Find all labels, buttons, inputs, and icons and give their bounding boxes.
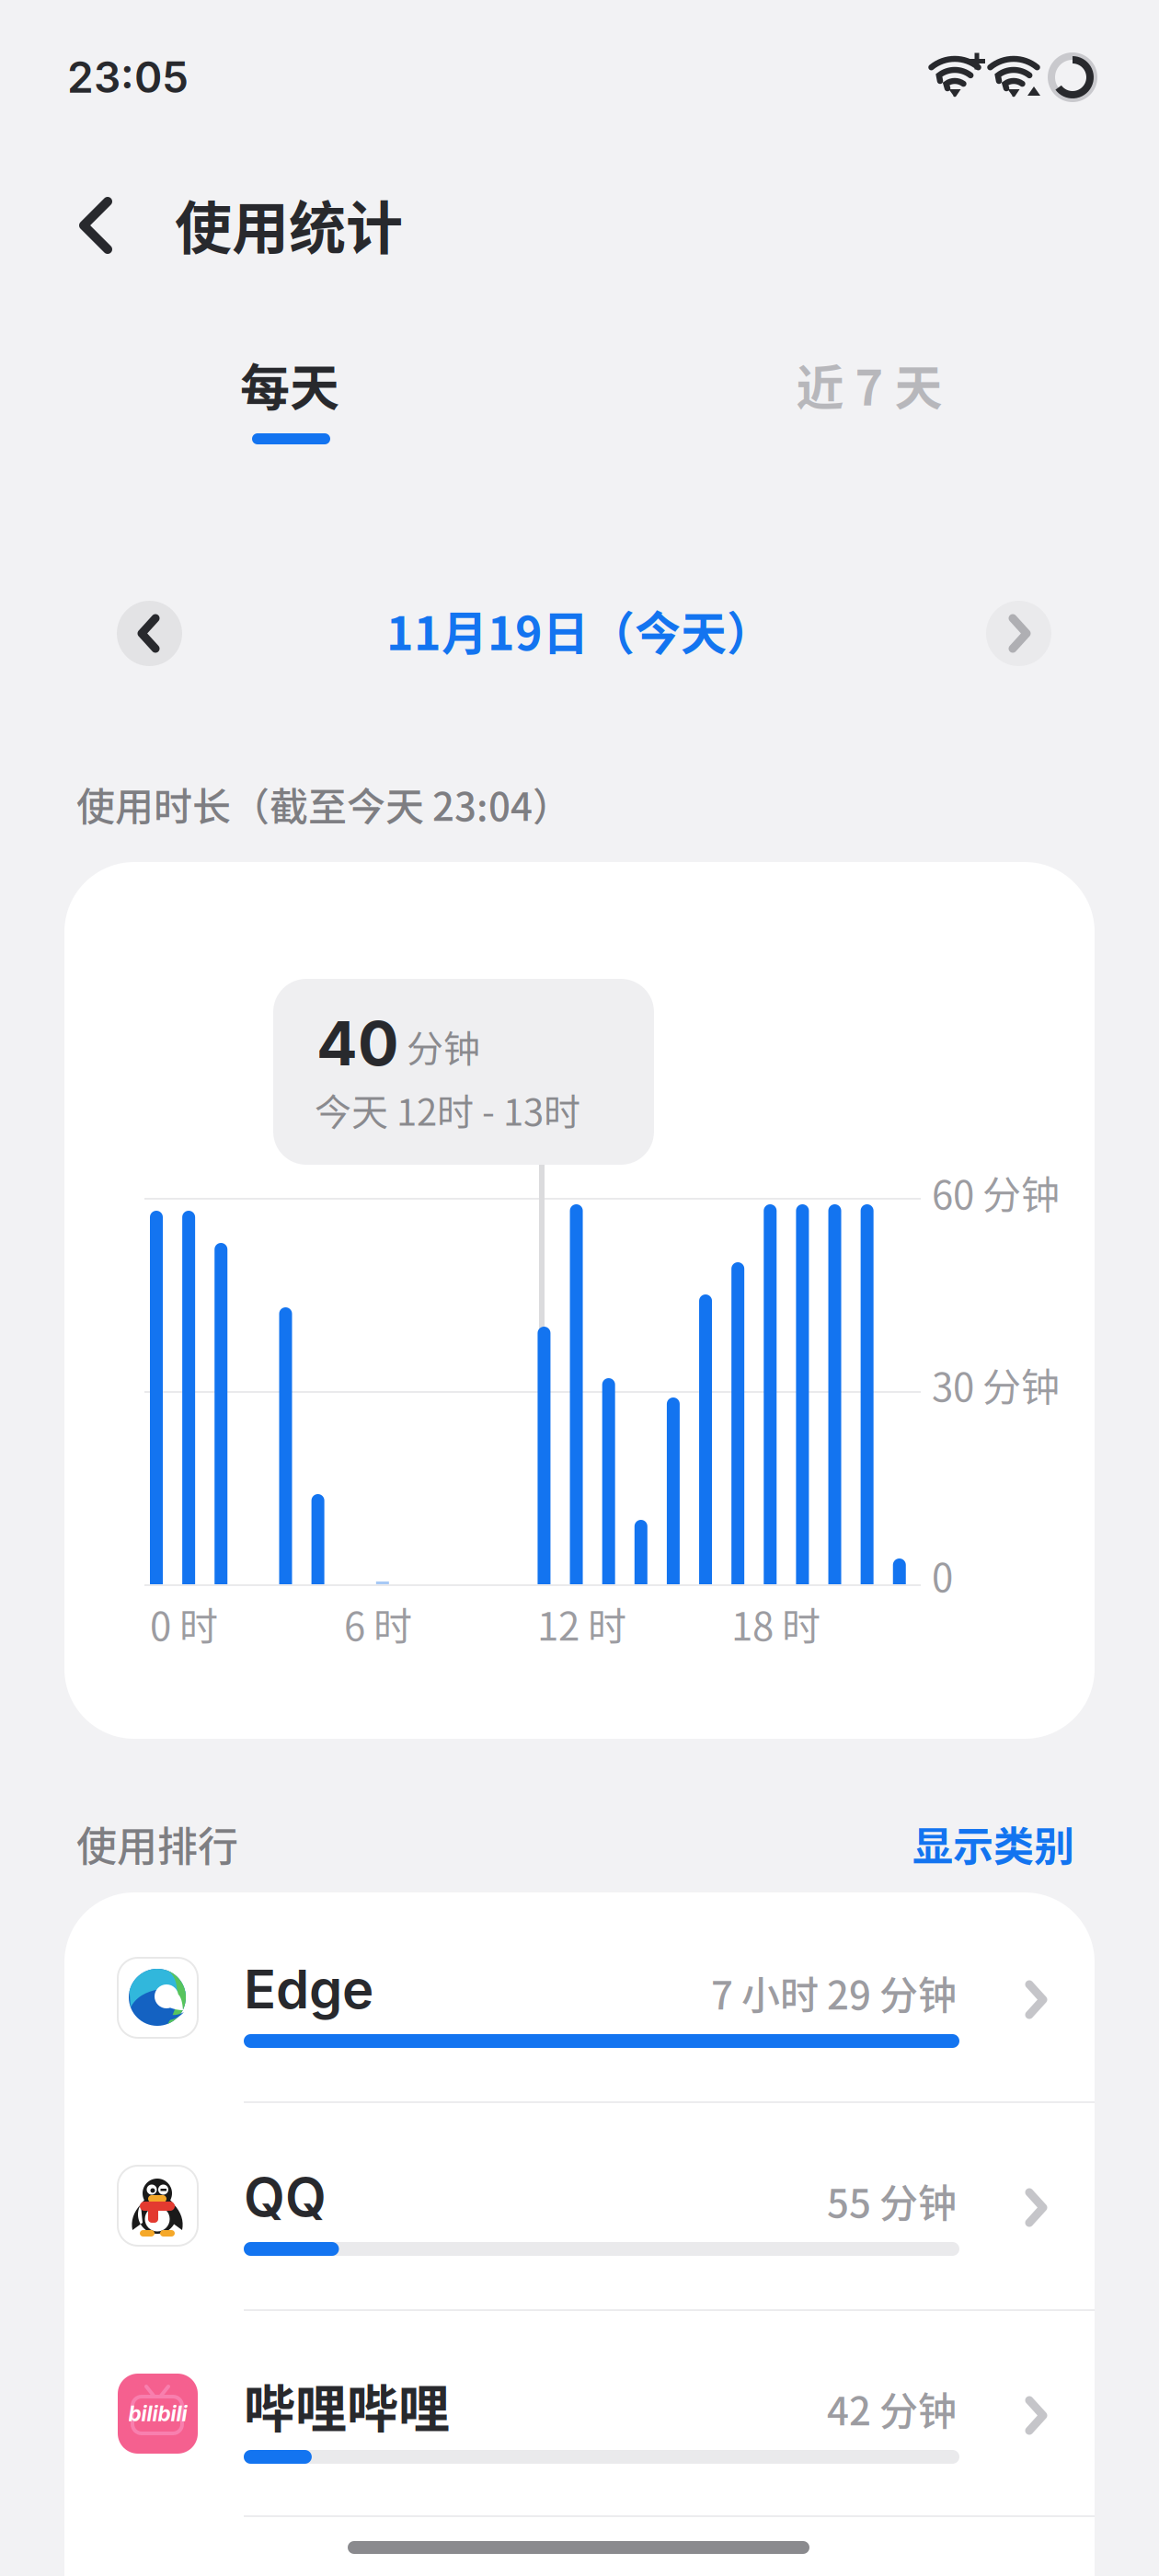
staticText: 0 <box>932 1547 953 1603</box>
staticText: 使用时长（截至今天 23:04） <box>76 776 571 832</box>
staticText: 42 分钟 <box>827 2381 957 2437</box>
staticText: 近 7 天 <box>796 350 942 419</box>
staticText: 11月19日（今天） <box>386 597 773 664</box>
staticText: QQ <box>244 2165 327 2229</box>
button[interactable]: Edge <box>64 1895 1095 2103</box>
staticText: 60 分钟 <box>932 1164 1060 1220</box>
button[interactable]: QQ <box>64 2103 1095 2311</box>
button[interactable]: bilibili <box>64 2311 1095 2519</box>
staticText: 使用统计 <box>175 183 403 266</box>
staticText: 12 时 <box>537 1596 626 1652</box>
staticText: 30 分钟 <box>932 1357 1060 1413</box>
button[interactable]: 11月19日（今天） <box>258 593 901 667</box>
staticText: 显示类别 <box>912 1814 1074 1873</box>
staticText: 使用排行 <box>76 1814 238 1873</box>
staticText: 每天 <box>240 349 339 421</box>
staticText: 6 时 <box>344 1596 412 1652</box>
button[interactable]: 近 7 天 <box>579 329 1159 440</box>
staticText: 今天 12时 - 13时 <box>315 1083 580 1136</box>
button[interactable]: 显示类别 <box>706 1811 1074 1876</box>
staticText: Edge <box>244 1957 373 2021</box>
button[interactable]: Previous day <box>117 601 182 666</box>
staticText: bilibili <box>128 2401 187 2426</box>
button[interactable]: 每天 <box>0 329 579 440</box>
staticText: 18 时 <box>731 1596 820 1652</box>
staticText: 0 时 <box>150 1596 218 1652</box>
button[interactable]: Next day <box>986 601 1051 666</box>
button[interactable]: Back <box>69 189 124 262</box>
staticText: 40 <box>316 1007 399 1080</box>
staticText: 分钟 <box>407 1019 480 1073</box>
staticText: 23:05 <box>67 52 189 103</box>
staticText: 哔哩哔哩 <box>244 2368 450 2442</box>
staticText: 55 分钟 <box>827 2173 957 2229</box>
staticText: 7 小时 29 分钟 <box>711 1965 957 2021</box>
